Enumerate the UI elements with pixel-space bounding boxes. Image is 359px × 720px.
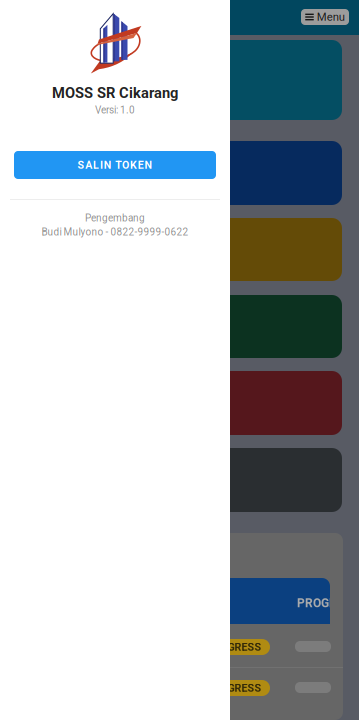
staticText: SALIN TOKEN <box>77 159 152 171</box>
staticText: Menu <box>317 10 345 24</box>
staticText: Absensi Online <box>30 232 116 248</box>
staticText: PROGRESS <box>297 596 357 610</box>
staticText: Pengembang <box>85 212 145 224</box>
staticText: Budi Mulyono - 0822-9999-0622 <box>41 226 188 238</box>
staticText: MOSS SR Cikarang <box>52 84 178 102</box>
button[interactable]: Menu <box>301 9 349 25</box>
staticText: Data Karyawan <box>30 155 117 171</box>
staticText: Versi: 1.0 <box>95 104 135 116</box>
staticText: PROGRESS <box>206 682 261 694</box>
staticText: PROGRESS <box>206 641 261 653</box>
staticText: Dashboard <box>30 54 95 70</box>
button[interactable]: SALIN TOKEN <box>14 151 216 179</box>
